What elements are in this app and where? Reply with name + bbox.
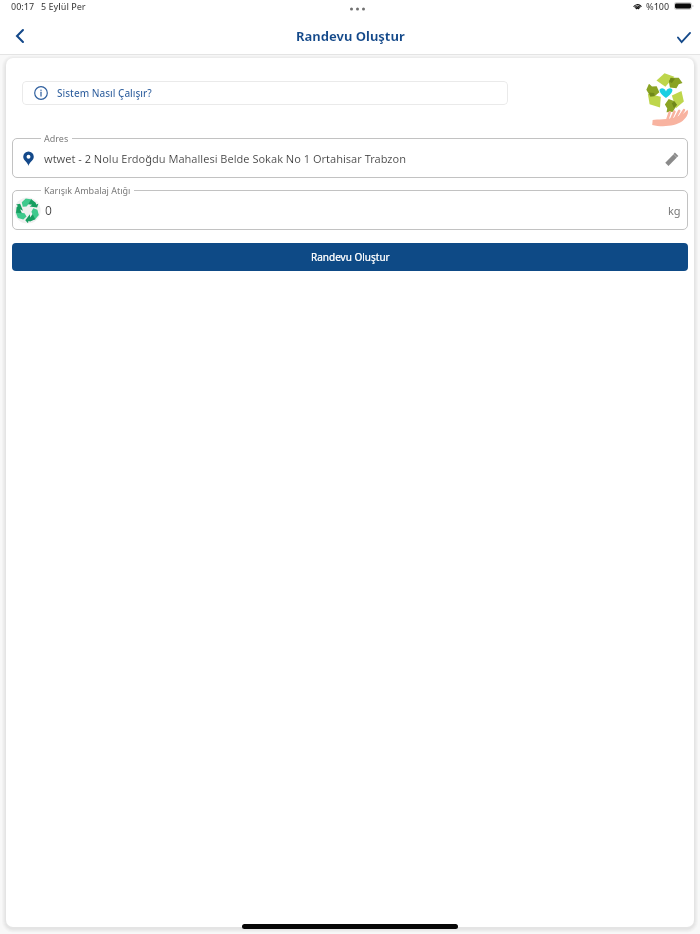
- button[interactable]: Sistem Nasıl Çalışır?: [22, 81, 508, 105]
- staticText: 0: [45, 202, 52, 218]
- staticText: Sistem Nasıl Çalışır?: [57, 86, 152, 100]
- staticText: Karışık Ambalaj Atığı: [44, 184, 131, 196]
- staticText: Adres: [44, 132, 69, 144]
- staticText: wtwet - 2 Nolu Erdoğdu Mahallesi Belde S…: [44, 151, 406, 166]
- staticText: %100: [646, 0, 670, 12]
- button[interactable]: Geri: [2, 18, 38, 54]
- button[interactable]: Adresi düzenle: [657, 143, 687, 173]
- staticText: Randevu Oluştur: [311, 250, 390, 264]
- staticText: Randevu Oluştur: [296, 27, 405, 45]
- staticText: kg: [668, 203, 681, 218]
- button[interactable]: Randevu Oluştur: [12, 243, 688, 271]
- staticText: 00:17 5 Eylül Per: [11, 0, 86, 12]
- button[interactable]: Onayla: [666, 19, 700, 55]
